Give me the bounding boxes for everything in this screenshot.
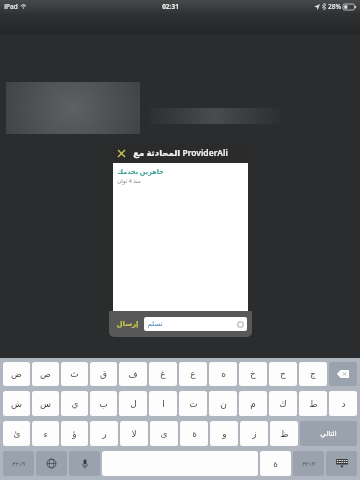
button[interactable]: لا [120,421,148,446]
staticText: ي [71,399,79,409]
button[interactable]: ط [299,391,327,416]
staticText: لا [131,429,137,439]
other: Clear text [237,321,244,328]
button[interactable]: Change keyboard [36,451,67,476]
staticText: ؤ [72,429,77,439]
button[interactable]: ا [149,391,177,416]
button[interactable]: ف [119,362,147,386]
staticText: ض [11,369,22,379]
staticText: 28% [328,2,341,11]
staticText: ة [192,429,197,439]
staticText: د [341,399,346,409]
staticText: ج [310,369,316,379]
button[interactable]: Numbers [293,451,324,476]
button[interactable]: ل [119,391,147,416]
button[interactable]: ه [209,362,237,386]
staticText: ت [189,399,198,409]
button[interactable]: ء [32,421,59,446]
staticText: ع [190,369,196,379]
button[interactable]: س [32,391,59,416]
button[interactable]: ك [269,391,297,416]
staticText: ث [70,369,79,379]
button[interactable]: Close [114,146,128,160]
staticText: ه [221,369,226,379]
button[interactable]: ب [90,391,117,416]
button[interactable]: م [239,391,267,416]
staticText: ص [40,369,51,379]
button[interactable]: Hide keyboard [326,451,357,476]
staticText: ف [128,369,138,379]
staticText: ن [220,399,227,409]
staticText: ا [162,399,165,409]
staticText: ئ [13,429,21,439]
staticText: ظ [280,429,289,439]
staticText: ق [100,369,107,379]
staticText: ل [130,399,137,409]
button[interactable]: إرسال [114,317,141,331]
button[interactable]: ت [179,391,207,416]
staticText: .؟!٣٢١ [11,460,26,467]
staticText: ك [279,399,287,409]
button[interactable]: ج [299,362,327,386]
button[interactable]: و [210,421,238,446]
button[interactable]: د [329,391,357,416]
staticText: التالي [320,430,337,438]
button[interactable]: ظ [270,421,298,446]
staticText: iPad [4,2,18,11]
button[interactable]: Backspace [329,362,357,386]
staticText: خ [250,369,256,379]
button[interactable]: Dictation [69,451,100,476]
staticText: ش [11,399,22,409]
staticText: إرسال [116,320,139,328]
button[interactable]: تسلم [144,317,247,331]
staticText: جاهزين نخدمك [117,167,164,176]
staticText: ى [160,429,168,439]
staticText: س [40,399,51,409]
staticText: المحادثة مع ProviderAli [133,147,228,159]
button[interactable]: ة [180,421,208,446]
button[interactable]: ؤ [61,421,88,446]
staticText: تسلم [147,320,163,328]
button[interactable]: ئ [3,421,30,446]
button[interactable]: ي [61,391,88,416]
button[interactable]: ص [32,362,59,386]
staticText: ة [273,459,278,469]
button[interactable]: ر [90,421,118,446]
button[interactable]: Numbers [3,451,34,476]
staticText: ب [99,399,108,409]
button[interactable]: غ [149,362,177,386]
button[interactable]: ن [209,391,237,416]
button[interactable]: ى [150,421,178,446]
button[interactable]: ع [179,362,207,386]
staticText: م [250,399,256,409]
button[interactable]: ض [3,362,30,386]
staticText: ء [43,429,48,439]
staticText: ح [280,369,286,379]
staticText: 02:31 [162,2,179,11]
button[interactable]: التالي [300,421,357,446]
button[interactable]: ح [269,362,297,386]
button[interactable]: ز [240,421,268,446]
button[interactable]: خ [239,362,267,386]
button[interactable]: ث [61,362,88,386]
button[interactable]: ق [90,362,117,386]
staticText: ر [102,429,107,439]
staticText: ط [309,399,318,409]
staticText: غ [160,369,166,379]
button[interactable]: ة [260,451,291,476]
staticText: و [222,429,227,439]
staticText: .؟!٣٢١ [301,460,316,467]
staticText: ز [252,429,257,439]
staticText: منذ 4 ثوان [117,177,141,184]
button[interactable]: ش [3,391,30,416]
